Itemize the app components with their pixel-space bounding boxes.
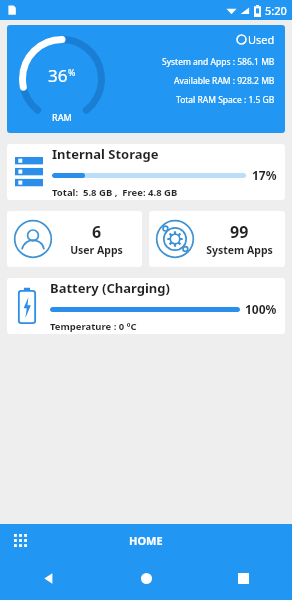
staticText: RAM	[52, 111, 72, 123]
button[interactable]: Recents	[195, 556, 292, 600]
staticText: Temperature : 0 ºC	[50, 320, 137, 333]
button[interactable]: Battery (Charging)	[7, 278, 285, 334]
button[interactable]: HOME	[117, 529, 175, 552]
staticText: 100%	[245, 301, 277, 317]
staticText: User Apps	[70, 243, 123, 257]
button[interactable]: Back	[0, 556, 98, 600]
staticText: 99	[230, 221, 249, 243]
staticText: Used	[248, 32, 275, 47]
staticText: System and Apps : 586.1 MB	[162, 56, 275, 68]
button[interactable]: Home	[98, 556, 195, 600]
staticText: Available RAM : 928.2 MB	[174, 75, 275, 87]
button[interactable]: 99	[149, 211, 285, 267]
staticText: 36	[48, 64, 68, 87]
staticText: Battery (Charging)	[50, 279, 170, 297]
staticText: 17%	[252, 167, 277, 183]
staticText: System Apps	[206, 243, 273, 257]
button[interactable]: Apps	[8, 528, 32, 552]
staticText: HOME	[129, 533, 163, 548]
staticText: Total RAM Space : 1.5 GB	[176, 94, 275, 106]
staticText: 6	[92, 221, 102, 243]
staticText: %	[68, 66, 76, 78]
staticText: 5:20	[265, 3, 287, 18]
button[interactable]: 6	[7, 211, 142, 267]
button[interactable]: Internal Storage	[7, 144, 285, 200]
staticText: Total: 5.8 GB , Free: 4.8 GB	[52, 186, 178, 199]
button[interactable]: Used	[7, 25, 285, 133]
staticText: Internal Storage	[52, 145, 159, 163]
